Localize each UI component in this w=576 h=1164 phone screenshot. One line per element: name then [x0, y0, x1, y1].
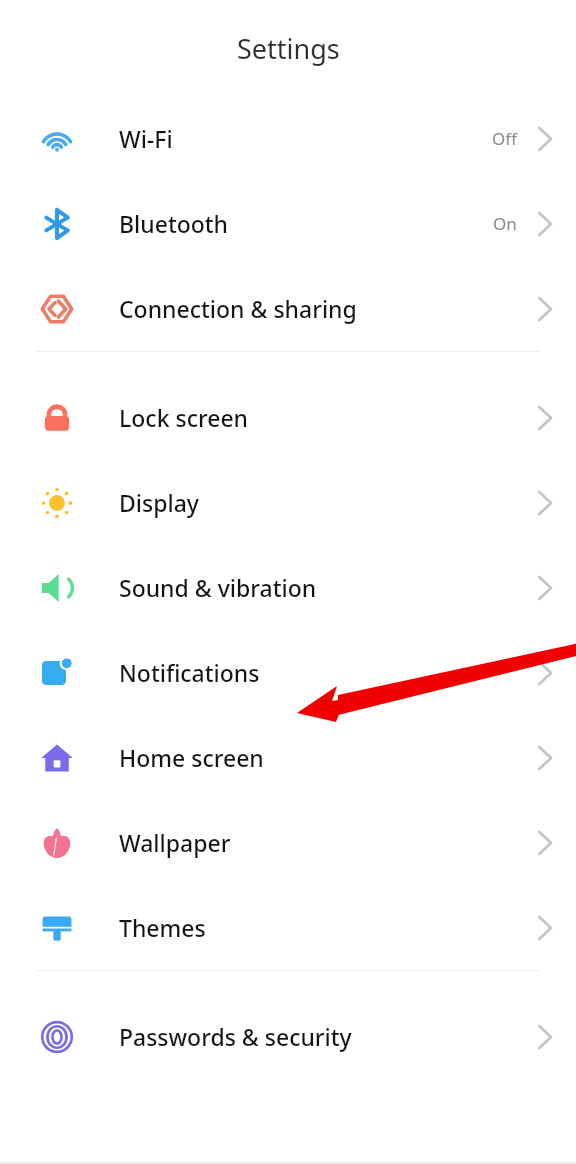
- staticText: Bluetooth: [119, 208, 229, 239]
- staticText: Home screen: [119, 742, 264, 773]
- staticText: Off: [492, 127, 517, 150]
- button[interactable]: Home screen: [0, 715, 576, 800]
- staticText: Notifications: [119, 657, 260, 688]
- button[interactable]: Bluetooth: [0, 181, 576, 266]
- staticText: Sound & vibration: [119, 572, 317, 603]
- staticText: Themes: [119, 912, 206, 943]
- button[interactable]: Wallpaper: [0, 800, 576, 885]
- button[interactable]: Notifications: [0, 630, 576, 715]
- button[interactable]: Connection & sharing: [0, 266, 576, 351]
- staticText: Lock screen: [119, 402, 249, 433]
- staticText: On: [493, 212, 517, 235]
- button[interactable]: Passwords & security: [0, 994, 576, 1079]
- button[interactable]: Display: [0, 460, 576, 545]
- staticText: Wi-Fi: [119, 123, 173, 154]
- staticText: Passwords & security: [119, 1021, 352, 1052]
- button[interactable]: Lock screen: [0, 375, 576, 460]
- other: Annotation arrow pointing to Notificatio…: [0, 0, 576, 1164]
- staticText: Connection & sharing: [119, 293, 357, 324]
- button[interactable]: Wi-Fi: [0, 96, 576, 181]
- button[interactable]: Sound & vibration: [0, 545, 576, 630]
- button[interactable]: Themes: [0, 885, 576, 970]
- staticText: Settings: [237, 30, 340, 67]
- staticText: Display: [119, 487, 199, 518]
- staticText: Wallpaper: [119, 827, 231, 858]
